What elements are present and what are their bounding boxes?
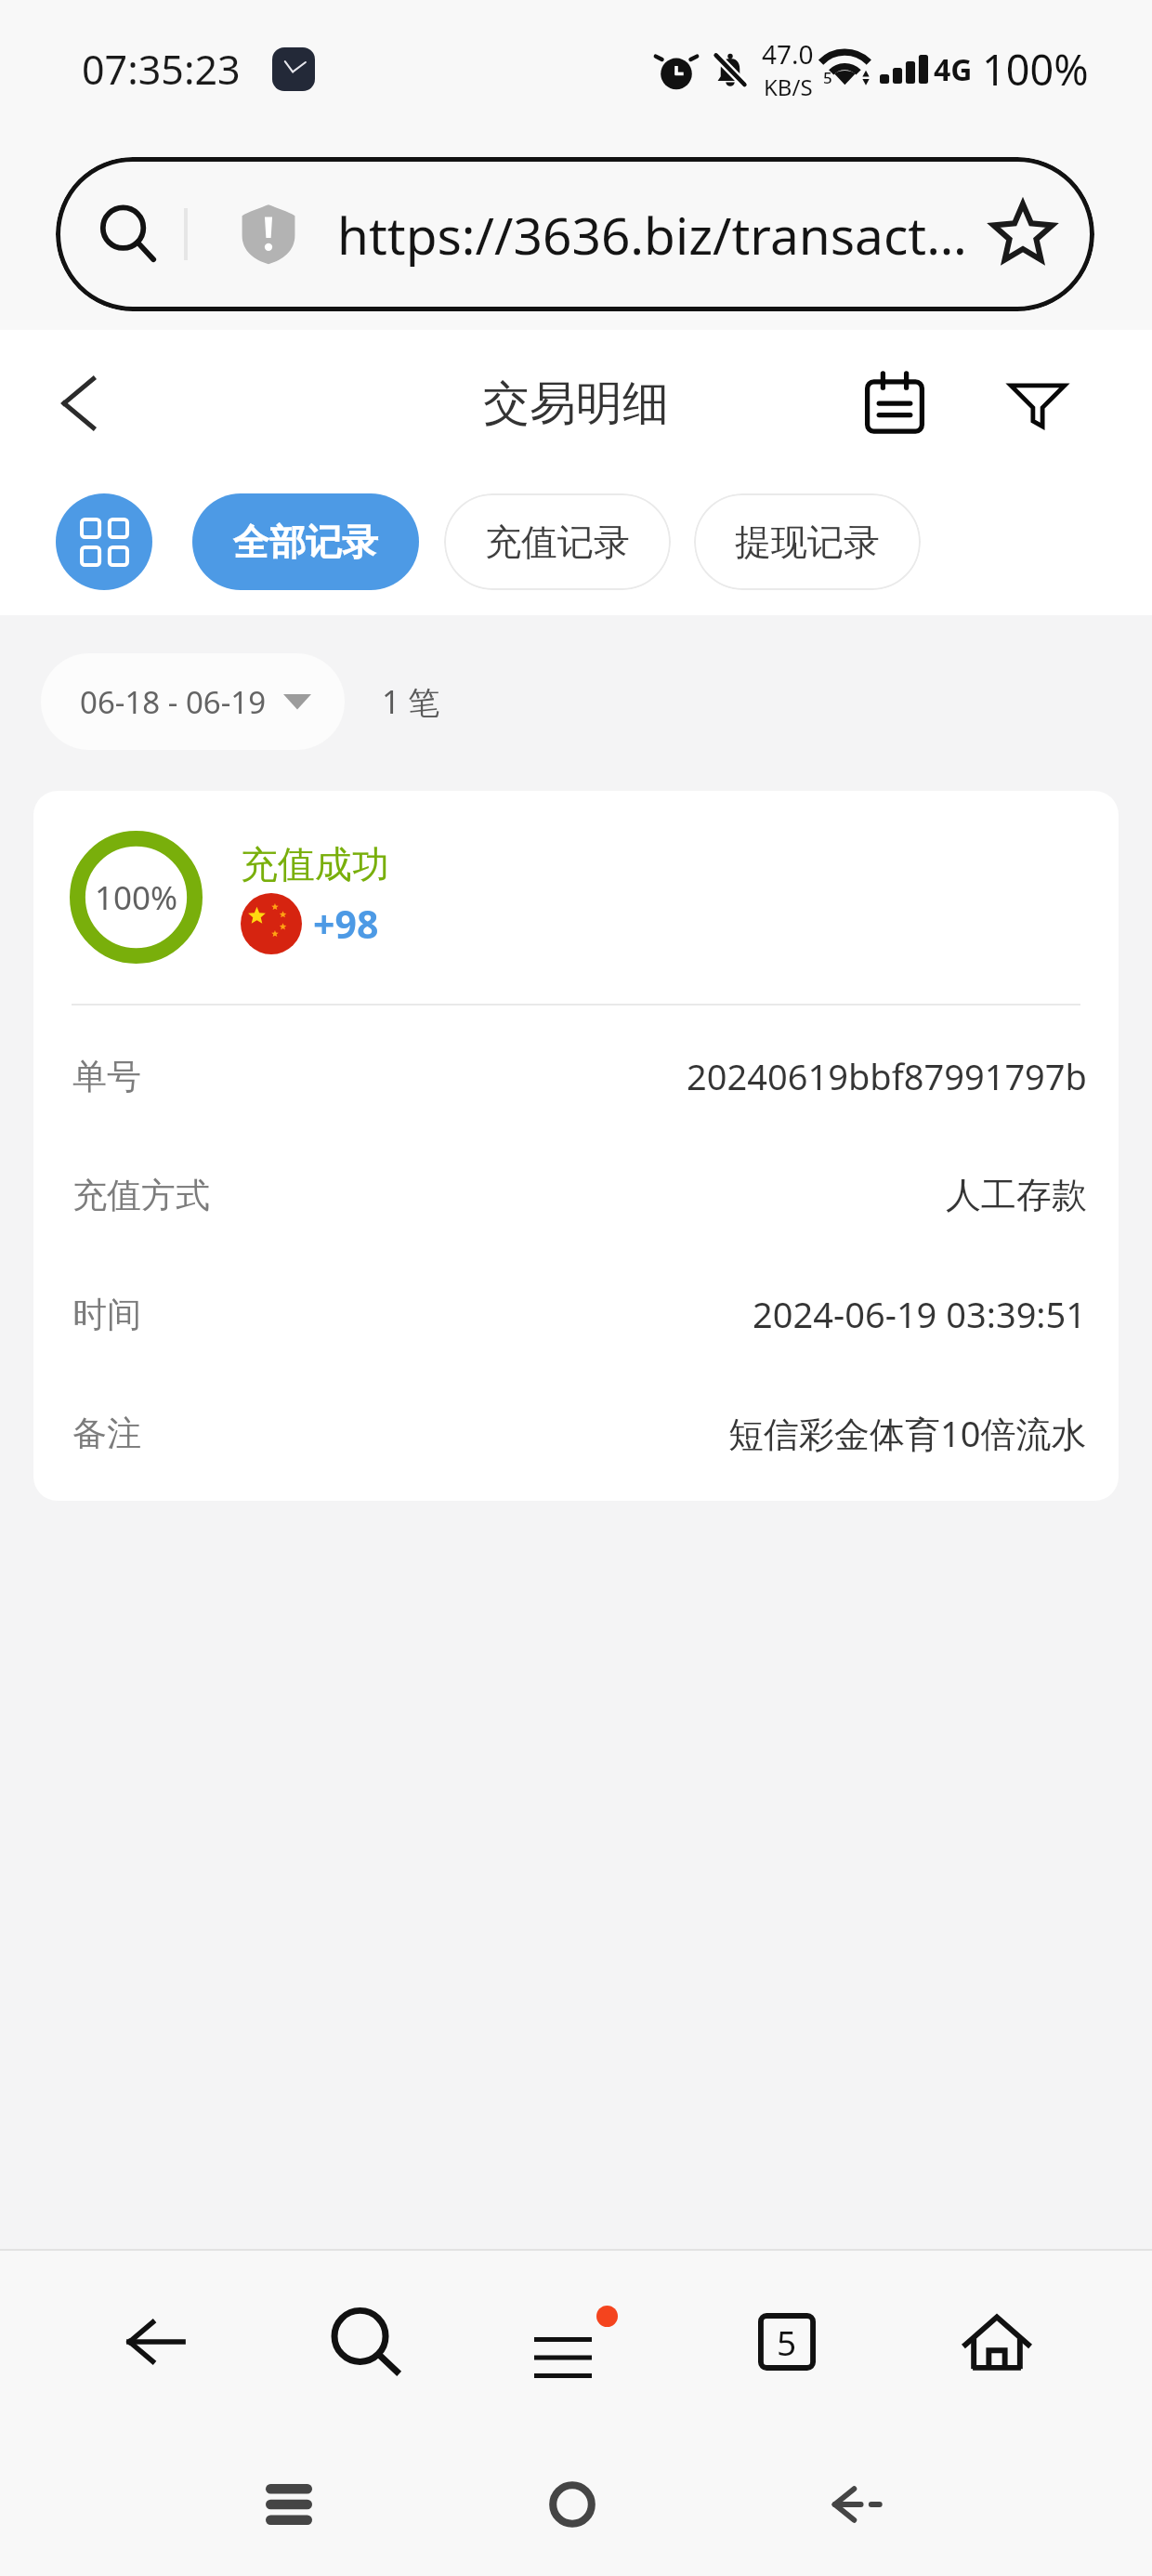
button[interactable]: Back [713,2435,997,2574]
staticText: 单号 [72,1055,141,1098]
button[interactable]: Recents [147,2435,430,2574]
staticText: 提现记录 [735,519,880,565]
staticText: 1 笔 [382,680,440,723]
button[interactable]: Back [50,2267,260,2416]
button[interactable]: 充值记录 [444,493,671,590]
button[interactable]: Back [35,359,124,448]
staticText: https://3636.biz/transact… [337,200,967,269]
button[interactable]: 提现记录 [694,493,921,590]
button[interactable]: 06-18 - 06-19 [41,653,345,750]
staticText: 时间 [72,1293,141,1336]
staticText: 47.0 [762,36,814,72]
button[interactable]: Calendar [844,352,946,454]
staticText: 100% [95,875,178,920]
staticText: 短信彩金体育10倍流水 [728,1409,1087,1457]
staticText: 人工存款 [946,1173,1087,1217]
staticText: KB/S [764,72,813,102]
other: Search [93,199,164,269]
staticText: 全部记录 [233,519,378,565]
button[interactable]: Grid view [56,493,152,590]
staticText: 充值记录 [485,519,630,565]
button[interactable]: Menu [471,2267,681,2416]
staticText: 100% [982,41,1089,98]
staticText: 06-18 - 06-19 [80,681,267,723]
button[interactable]: 100% [33,791,1119,1501]
button[interactable]: Tabs [682,2267,892,2416]
staticText: 4G [934,49,973,90]
button[interactable]: Search [261,2267,471,2416]
staticText: 2024-06-19 03:39:51 [753,1290,1087,1338]
button[interactable]: Home [430,2435,713,2574]
button[interactable]: Filter [988,354,1087,453]
button[interactable]: 全部记录 [192,493,419,590]
other: Bookmark [983,194,1063,274]
staticText: 07:35:23 [82,42,241,97]
button[interactable]: Search [56,157,1094,311]
button[interactable]: Home [892,2267,1102,2416]
staticText: 充值方式 [72,1174,210,1217]
staticText: 5 [823,67,832,88]
staticText: 20240619bbf87991797b [687,1052,1087,1100]
staticText: 充值成功 [241,841,389,887]
staticText: 5 [777,2319,797,2365]
staticText: +98 [313,898,379,950]
staticText: 交易明细 [483,375,669,433]
staticText: 备注 [72,1412,141,1455]
